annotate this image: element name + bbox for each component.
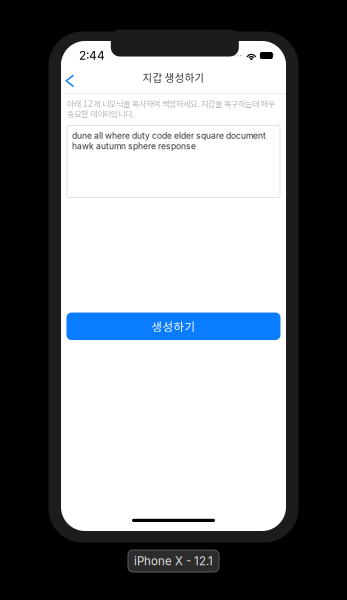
- staticText: dune all where duty code elder square do…: [72, 131, 266, 151]
- button[interactable]: Back: [61, 63, 89, 91]
- staticText: 지갑 생성하기: [142, 69, 204, 85]
- staticText: 아래 12개 니모닉을 복사하여 백업하세요. 지갑을 복구하는데 매우 중요한…: [67, 98, 275, 120]
- staticText: 생성하기: [151, 318, 195, 335]
- button[interactable]: iPhone X - 12.1: [128, 550, 219, 572]
- staticText: iPhone X - 12.1: [134, 554, 213, 568]
- staticText: 2:44: [79, 48, 105, 63]
- button[interactable]: 생성하기: [66, 313, 280, 340]
